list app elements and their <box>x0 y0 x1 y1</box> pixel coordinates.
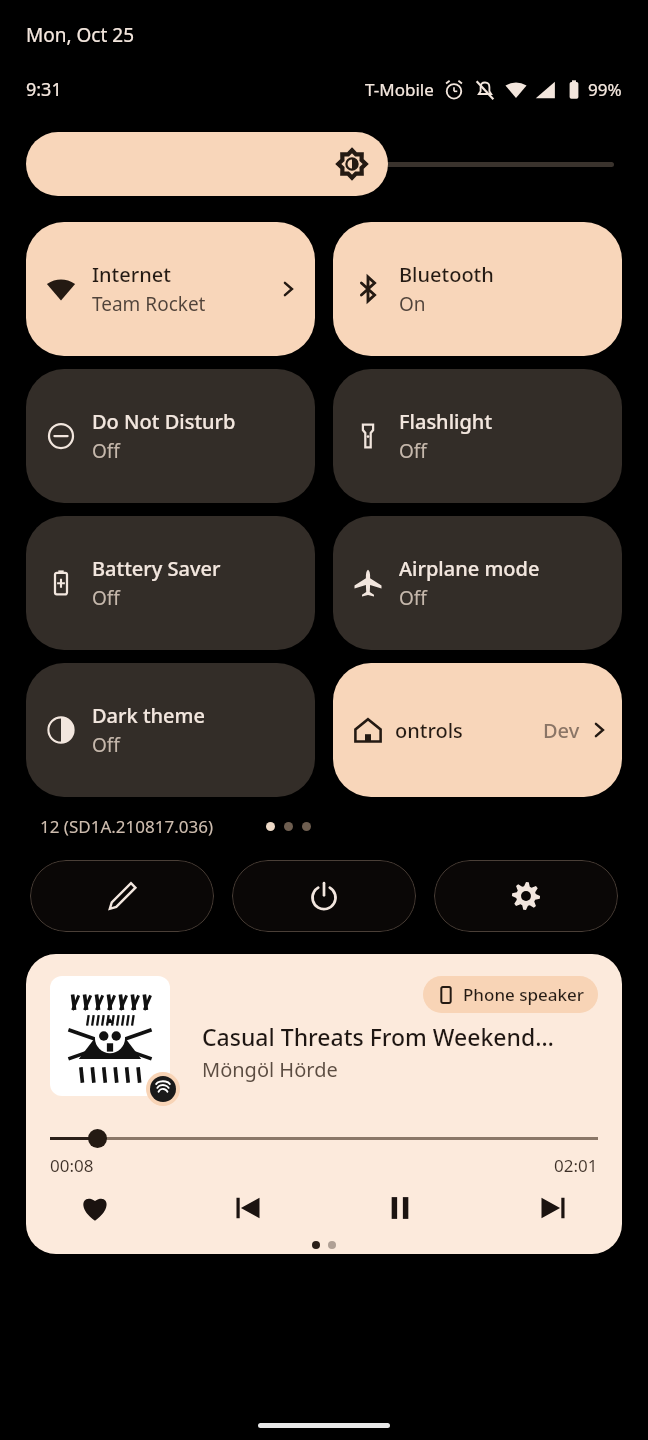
staticText: Airplane mode <box>399 555 540 582</box>
button[interactable]: Battery Saver <box>26 516 315 650</box>
button[interactable]: Phone speaker <box>423 976 598 1013</box>
staticText: Casual Threats From Weekend… <box>202 1021 554 1052</box>
button[interactable]: Next <box>528 1183 578 1233</box>
staticText: Off <box>92 732 120 758</box>
button[interactable]: Flashlight <box>333 369 622 503</box>
staticText: Do Not Disturb <box>92 408 236 435</box>
staticText: ontrols <box>395 717 463 744</box>
button[interactable]: Dark theme <box>26 663 315 797</box>
staticText: 00:08 <box>50 1154 94 1177</box>
staticText: Off <box>399 438 427 464</box>
staticText: Möngöl Hörde <box>202 1056 338 1083</box>
button[interactable]: Internet <box>26 222 315 356</box>
staticText: On <box>399 291 426 317</box>
staticText: Off <box>92 585 120 611</box>
staticText: Dev <box>543 717 580 744</box>
staticText: Team Rocket <box>92 291 206 317</box>
button[interactable]: Airplane mode <box>333 516 622 650</box>
staticText: Off <box>399 585 427 611</box>
staticText: Mon, Oct 25 <box>26 22 134 48</box>
button[interactable]: Edit tiles <box>30 860 214 932</box>
staticText: Battery Saver <box>92 555 221 582</box>
staticText: Internet <box>92 261 171 288</box>
staticText: T-Mobile <box>365 78 434 101</box>
staticText: 9:31 <box>26 77 62 102</box>
staticText: Off <box>92 438 120 464</box>
button[interactable]: Favorite <box>70 1183 120 1233</box>
staticText: Bluetooth <box>399 261 494 288</box>
staticText: 99% <box>588 78 622 101</box>
staticText: Flashlight <box>399 408 493 435</box>
button[interactable]: ontrols <box>333 663 622 797</box>
button[interactable]: Pause <box>375 1183 425 1233</box>
button[interactable]: Brightness <box>26 132 622 196</box>
button[interactable]: Phone speaker <box>26 954 622 1254</box>
staticText: Phone speaker <box>463 983 584 1006</box>
button[interactable]: Bluetooth <box>333 222 622 356</box>
button[interactable]: Power <box>232 860 416 932</box>
button[interactable]: Settings <box>434 860 618 932</box>
button[interactable]: Do Not Disturb <box>26 369 315 503</box>
staticText: 12 (SD1A.210817.036) <box>40 815 214 838</box>
button[interactable]: Previous <box>223 1183 273 1233</box>
staticText: 02:01 <box>554 1154 598 1177</box>
staticText: Dark theme <box>92 702 205 729</box>
